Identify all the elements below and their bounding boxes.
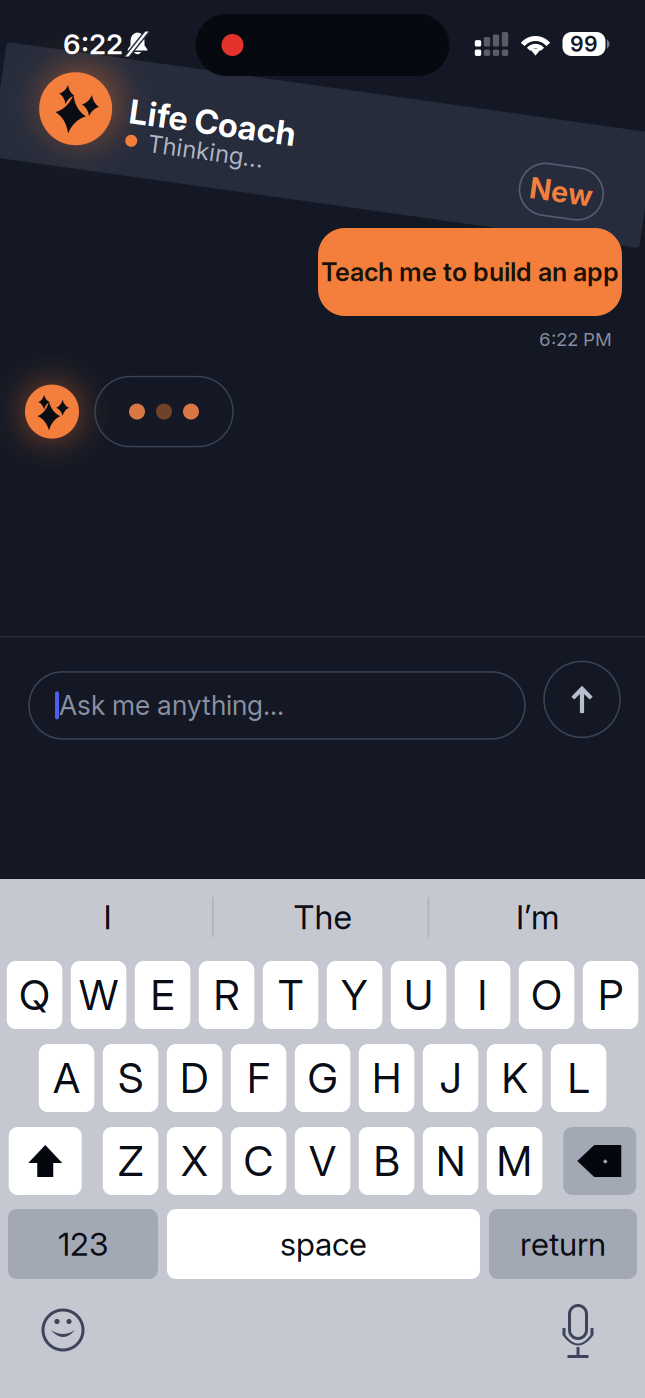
button[interactable]: X xyxy=(167,1127,222,1195)
staticText: I xyxy=(477,970,487,1020)
button[interactable]: Z xyxy=(103,1127,158,1195)
button[interactable]: J xyxy=(423,1044,478,1112)
staticText: 123 xyxy=(58,1225,108,1263)
staticText: I xyxy=(103,897,111,937)
button[interactable]: E xyxy=(135,961,190,1029)
button[interactable]: Shift xyxy=(9,1127,82,1195)
button[interactable]: U xyxy=(391,961,446,1029)
staticText: H xyxy=(372,1053,401,1103)
button[interactable]: 123 xyxy=(8,1209,158,1279)
staticText: D xyxy=(180,1053,209,1103)
staticText: K xyxy=(501,1053,527,1103)
staticText: Y xyxy=(341,970,368,1020)
staticText: return xyxy=(520,1225,606,1263)
button[interactable]: B xyxy=(359,1127,414,1195)
staticText: C xyxy=(243,1136,273,1186)
button[interactable]: C xyxy=(231,1127,286,1195)
button[interactable]: Emoji keyboard xyxy=(28,1295,98,1365)
staticText: I’m xyxy=(516,897,559,937)
staticText: J xyxy=(439,1053,461,1103)
button[interactable]: O xyxy=(519,961,574,1029)
button[interactable]: F xyxy=(231,1044,286,1112)
staticText: N xyxy=(436,1136,465,1186)
button[interactable]: M xyxy=(487,1127,542,1195)
button[interactable]: The xyxy=(215,879,430,955)
staticText: U xyxy=(404,970,433,1020)
staticText: P xyxy=(598,970,623,1020)
button[interactable]: H xyxy=(359,1044,414,1112)
staticText: B xyxy=(373,1136,399,1186)
staticText: New xyxy=(533,140,597,176)
staticText: Life Coach xyxy=(126,118,294,158)
staticText: 6:22 PM xyxy=(539,328,612,351)
staticText: S xyxy=(118,1053,143,1103)
staticText: E xyxy=(150,970,174,1020)
button[interactable]: A xyxy=(39,1044,94,1112)
button[interactable]: return xyxy=(489,1209,637,1279)
button[interactable]: Y xyxy=(327,961,382,1029)
staticText: Ask me anything... xyxy=(59,689,284,722)
staticText: M xyxy=(496,1136,532,1186)
button[interactable]: G xyxy=(295,1044,350,1112)
button[interactable]: New xyxy=(523,132,607,184)
staticText: Thinking... xyxy=(149,153,266,182)
staticText: X xyxy=(181,1136,208,1186)
button[interactable]: K xyxy=(487,1044,542,1112)
staticText: The xyxy=(293,897,351,937)
staticText: 6:22 xyxy=(63,27,123,61)
button[interactable]: Send xyxy=(544,667,620,743)
staticText: Z xyxy=(118,1136,143,1186)
staticText: T xyxy=(278,970,303,1020)
button[interactable]: R xyxy=(199,961,254,1029)
button[interactable]: I xyxy=(455,961,510,1029)
button[interactable]: N xyxy=(423,1127,478,1195)
staticText: O xyxy=(531,970,562,1020)
button[interactable]: D xyxy=(167,1044,222,1112)
staticText: W xyxy=(79,970,118,1020)
button[interactable]: space xyxy=(167,1209,480,1279)
staticText: 99 xyxy=(570,31,598,57)
button[interactable]: S xyxy=(103,1044,158,1112)
button[interactable]: I xyxy=(0,879,215,955)
staticText: Teach me to build an app xyxy=(321,257,619,287)
button[interactable]: Q xyxy=(7,961,62,1029)
button[interactable]: T xyxy=(263,961,318,1029)
staticText: V xyxy=(309,1136,336,1186)
staticText: L xyxy=(567,1053,589,1103)
button[interactable]: W xyxy=(71,961,126,1029)
button[interactable]: P xyxy=(583,961,638,1029)
button[interactable]: V xyxy=(295,1127,350,1195)
staticText: A xyxy=(53,1053,80,1103)
staticText: space xyxy=(280,1225,367,1263)
staticText: F xyxy=(247,1053,270,1103)
button[interactable]: L xyxy=(551,1044,606,1112)
button[interactable]: I’m xyxy=(430,879,645,955)
staticText: R xyxy=(213,970,239,1020)
staticText: Q xyxy=(19,970,50,1020)
button[interactable]: Delete xyxy=(563,1127,636,1195)
staticText: G xyxy=(307,1053,337,1103)
button[interactable]: Ask me anything... xyxy=(29,672,525,739)
button[interactable]: Dictation xyxy=(543,1295,613,1365)
